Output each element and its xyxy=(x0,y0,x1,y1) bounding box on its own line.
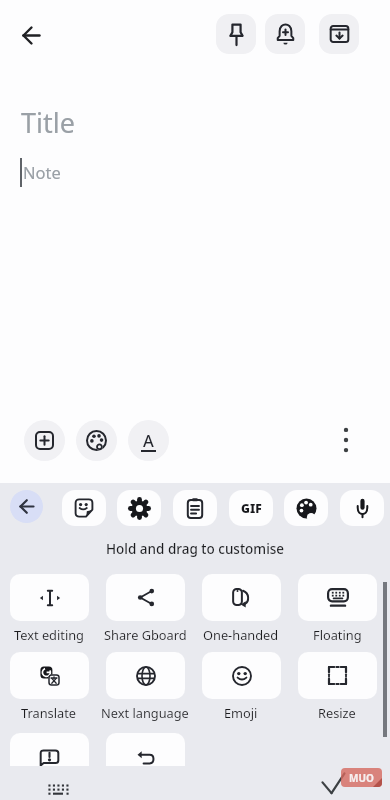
staticText: GIF xyxy=(241,500,262,516)
button[interactable] xyxy=(10,574,89,621)
staticText: Note xyxy=(23,161,61,183)
button[interactable] xyxy=(76,420,117,461)
staticText: MUO xyxy=(349,771,374,785)
button[interactable] xyxy=(106,652,185,699)
button[interactable]: A xyxy=(128,420,169,461)
button[interactable] xyxy=(318,770,348,796)
staticText: Text editing xyxy=(14,626,84,643)
button[interactable] xyxy=(106,574,185,621)
button[interactable] xyxy=(14,18,48,52)
staticText: One-handed xyxy=(203,626,279,643)
button[interactable] xyxy=(10,733,89,766)
button[interactable] xyxy=(24,420,65,461)
button[interactable] xyxy=(202,652,281,699)
staticText: Next language xyxy=(101,704,189,721)
button[interactable] xyxy=(173,490,217,526)
button[interactable] xyxy=(265,14,305,54)
button[interactable] xyxy=(45,781,70,799)
button[interactable] xyxy=(10,652,89,699)
staticText: Title xyxy=(21,104,75,141)
staticText: Share Gboard xyxy=(104,626,187,643)
button[interactable] xyxy=(284,490,328,526)
button[interactable] xyxy=(336,426,356,454)
button[interactable] xyxy=(202,574,281,621)
button[interactable] xyxy=(117,490,161,526)
button[interactable]: GIF xyxy=(229,490,273,526)
button[interactable] xyxy=(216,14,256,54)
staticText: Floating xyxy=(313,626,362,643)
button[interactable] xyxy=(298,574,377,621)
button[interactable] xyxy=(298,652,377,699)
staticText: A xyxy=(143,429,154,451)
button[interactable] xyxy=(10,490,43,523)
staticText: Translate xyxy=(21,704,77,721)
button[interactable] xyxy=(106,733,185,766)
staticText: Hold and drag to customise xyxy=(106,540,285,558)
staticText: Resize xyxy=(318,704,356,721)
button[interactable] xyxy=(62,490,106,526)
staticText: Emoji xyxy=(224,704,258,721)
button[interactable] xyxy=(340,490,384,526)
button[interactable] xyxy=(319,14,359,54)
